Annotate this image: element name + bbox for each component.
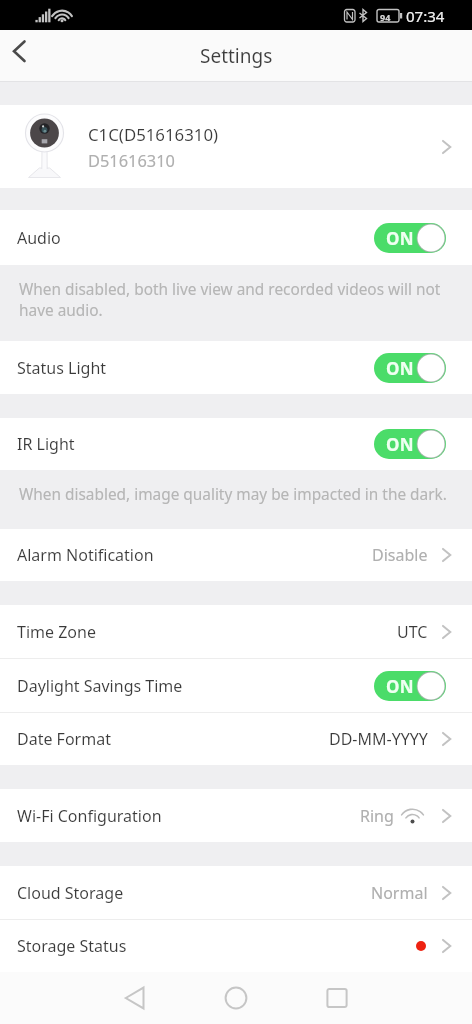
button[interactable]: Date Format bbox=[0, 713, 472, 765]
button[interactable]: Alarm Notification bbox=[0, 529, 472, 581]
staticText: When disabled, image quality may be impa… bbox=[19, 484, 447, 505]
button[interactable]: Toggle on bbox=[374, 671, 446, 701]
staticText: Audio bbox=[17, 227, 374, 249]
staticText: Storage Status bbox=[17, 935, 416, 957]
button[interactable]: C1C(D51616310) bbox=[0, 105, 472, 188]
button[interactable]: Home bbox=[213, 975, 258, 1020]
staticText: 07:34 bbox=[406, 6, 445, 26]
staticText: ON bbox=[386, 675, 414, 698]
staticText: Date Format bbox=[17, 728, 329, 750]
staticText: UTC bbox=[397, 621, 428, 643]
staticText: When disabled, both live view and record… bbox=[19, 279, 464, 321]
button[interactable]: Wi-Fi Configuration bbox=[0, 789, 472, 842]
button[interactable]: Recent apps bbox=[314, 975, 359, 1020]
button[interactable]: Storage Status bbox=[0, 920, 472, 972]
staticText: 94 bbox=[380, 11, 391, 23]
staticText: ON bbox=[386, 433, 414, 456]
staticText: Daylight Savings Time bbox=[17, 675, 374, 697]
button[interactable]: Daylight Savings Time bbox=[0, 659, 472, 712]
staticText: IR Light bbox=[17, 433, 374, 455]
button[interactable]: Back bbox=[0, 34, 44, 78]
staticText: C1C(D51616310) bbox=[88, 123, 219, 146]
button[interactable]: Back bbox=[112, 975, 157, 1020]
staticText: ON bbox=[386, 227, 414, 250]
staticText: Ring bbox=[360, 805, 394, 827]
button[interactable]: Toggle on bbox=[374, 223, 446, 253]
button[interactable]: Time Zone bbox=[0, 605, 472, 658]
staticText: Disable bbox=[372, 544, 428, 566]
staticText: Normal bbox=[371, 882, 428, 904]
button[interactable]: Cloud Storage bbox=[0, 866, 472, 919]
button[interactable]: Status Light bbox=[0, 341, 472, 394]
staticText: Settings bbox=[200, 43, 273, 69]
staticText: Status Light bbox=[17, 357, 374, 379]
staticText: Alarm Notification bbox=[17, 544, 372, 566]
button[interactable]: Toggle on bbox=[374, 429, 446, 459]
button[interactable]: Toggle on bbox=[374, 353, 446, 383]
staticText: D51616310 bbox=[88, 149, 175, 171]
staticText: ON bbox=[386, 357, 414, 380]
button[interactable]: IR Light bbox=[0, 418, 472, 470]
staticText: Time Zone bbox=[17, 621, 397, 643]
button[interactable]: Audio bbox=[0, 210, 472, 265]
staticText: Wi-Fi Configuration bbox=[17, 805, 360, 827]
staticText: DD-MM-YYYY bbox=[329, 728, 428, 750]
staticText: Cloud Storage bbox=[17, 882, 371, 904]
